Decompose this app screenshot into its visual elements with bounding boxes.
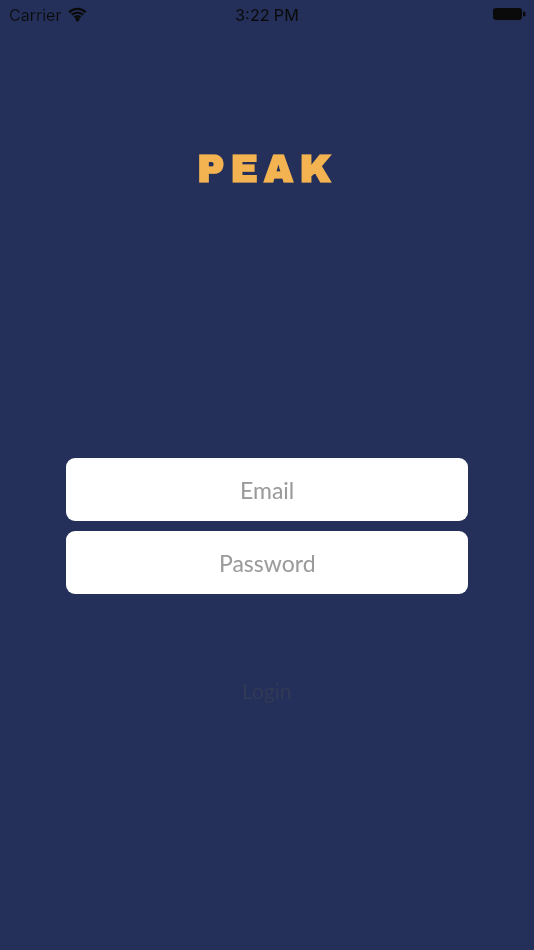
- button[interactable]: Email: [66, 458, 468, 521]
- staticText: Login: [242, 678, 292, 703]
- button[interactable]: Login: [226, 670, 308, 711]
- staticText: 3:22 PM: [235, 5, 299, 24]
- staticText: Email: [240, 476, 295, 504]
- staticText: Carrier: [9, 5, 62, 24]
- staticText: Password: [219, 549, 316, 577]
- button[interactable]: Password: [66, 531, 468, 594]
- staticText: PEAK: [197, 149, 338, 190]
